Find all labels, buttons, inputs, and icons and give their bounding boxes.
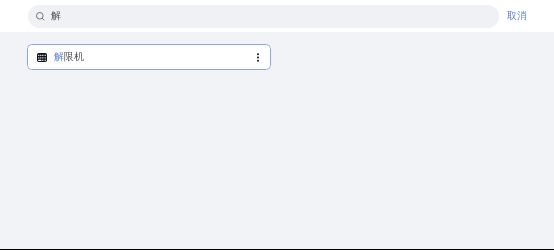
- staticText: 解: [51, 9, 61, 22]
- button[interactable]: 解: [28, 5, 499, 28]
- staticText: 解限机: [54, 50, 84, 63]
- button[interactable]: 解限机: [27, 44, 271, 70]
- staticText: 取消: [507, 9, 527, 22]
- button[interactable]: 取消: [499, 0, 554, 32]
- button[interactable]: More options: [245, 44, 271, 70]
